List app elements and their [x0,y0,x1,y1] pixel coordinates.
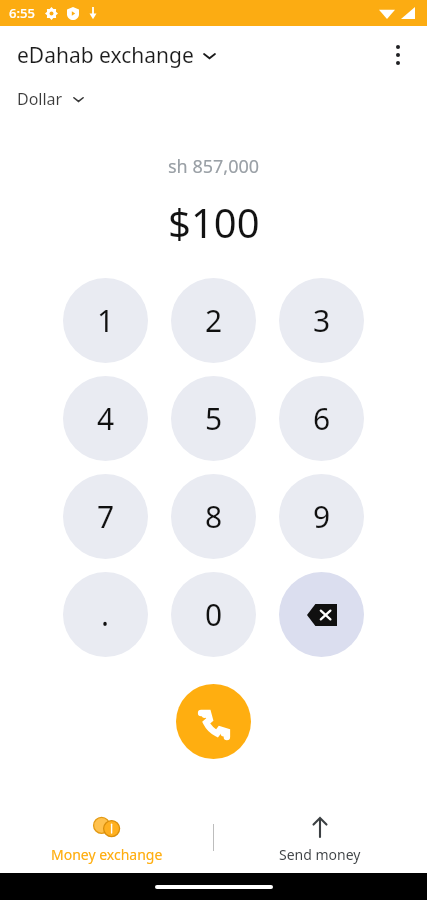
button[interactable]: 6 [279,376,364,461]
button[interactable]: 4 [63,376,148,461]
staticText: 2 [205,300,223,341]
staticText: 4 [97,398,115,439]
button[interactable]: 2 [171,278,256,363]
staticText: eDahab exchange [17,41,194,70]
staticText: . [101,594,110,635]
staticText: Money exchange [51,845,163,864]
staticText: Dollar [17,88,63,110]
button[interactable]: . [63,572,148,657]
staticText: 6 [313,398,331,439]
button[interactable]: 3 [279,278,364,363]
button[interactable]: 0 [171,572,256,657]
button[interactable]: 1 [63,278,148,363]
button[interactable]: More options [377,34,419,76]
button[interactable]: 7 [63,474,148,559]
button[interactable]: 9 [279,474,364,559]
button[interactable]: Money exchange [0,807,213,873]
button[interactable]: Dollar [14,84,87,114]
staticText: 1 [97,300,115,341]
staticText: 6:55 [9,4,35,22]
button[interactable]: 8 [171,474,256,559]
staticText: 0 [205,594,223,635]
staticText: $100 [168,195,260,249]
staticText: 8 [205,496,223,537]
button[interactable]: Send money [213,807,427,873]
button[interactable]: eDahab exchange [14,36,219,75]
staticText: Send money [279,845,361,864]
staticText: 9 [313,496,331,537]
staticText: 3 [313,300,331,341]
button[interactable]: Call [176,684,251,759]
staticText: sh 857,000 [168,154,260,179]
button[interactable]: 5 [171,376,256,461]
staticText: 5 [205,398,223,439]
button[interactable]: Backspace [279,572,364,657]
staticText: 7 [97,496,115,537]
